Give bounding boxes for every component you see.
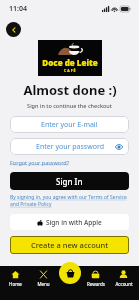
button[interactable]: Rewards <box>83 270 108 287</box>
staticText: Almost done :) <box>23 81 117 99</box>
staticText: Account <box>115 281 133 287</box>
staticText: Sign in to continue the checkout <box>27 102 112 109</box>
staticText: 11:04 <box>9 4 27 14</box>
staticText: Doce de Leite <box>42 57 98 68</box>
staticText: Rewards <box>87 281 105 287</box>
staticText: Sign In <box>56 176 83 187</box>
button[interactable]: Back <box>6 22 21 37</box>
button[interactable]: Menu <box>31 270 56 287</box>
staticText: Sign in with Apple <box>46 218 102 227</box>
button[interactable]: Cart <box>59 262 81 284</box>
button[interactable]: Enter your password <box>10 138 129 155</box>
button[interactable]: Sign In <box>10 172 129 190</box>
button[interactable]: Forgot your password? <box>10 159 70 166</box>
staticText: Enter your password <box>36 142 104 152</box>
staticText: Home <box>9 281 22 287</box>
button[interactable]: Home <box>3 270 28 287</box>
button[interactable]: By signing in, you agree with our Terms … <box>10 194 129 208</box>
button[interactable]: Create a new account <box>10 236 129 254</box>
staticText: Enter your E-mail <box>41 120 98 130</box>
staticText: CAFÉ <box>64 68 77 73</box>
button[interactable]: Enter your E-mail <box>10 116 129 133</box>
button[interactable]: Show password <box>114 142 123 151</box>
button[interactable]: Account <box>111 270 136 287</box>
staticText: Create a new account <box>31 240 109 250</box>
button[interactable]: Sign in with Apple <box>10 214 129 230</box>
staticText: Menu <box>37 281 50 287</box>
